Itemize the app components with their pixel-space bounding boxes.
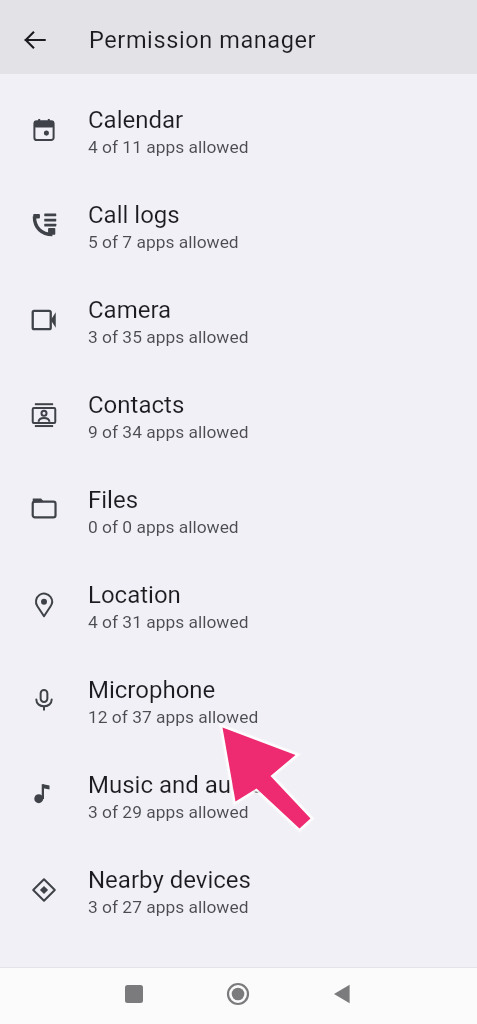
button[interactable]: Contacts [0,369,477,464]
button[interactable]: Navigate up [8,13,62,67]
staticText: 3 of 35 apps allowed [88,327,249,347]
button[interactable]: Music and audio [0,749,477,844]
button[interactable]: Recent apps [114,974,154,1014]
staticText: 4 of 31 apps allowed [88,612,249,632]
button[interactable]: Camera [0,274,477,369]
staticText: Nearby devices [88,866,251,894]
staticText: Microphone [88,676,216,704]
staticText: Camera [88,296,172,324]
staticText: 0 of 0 apps allowed [88,517,239,537]
staticText: 5 of 7 apps allowed [88,232,239,252]
button[interactable]: Back [322,974,362,1014]
staticText: 4 of 11 apps allowed [88,137,249,157]
staticText: 3 of 29 apps allowed [88,802,249,822]
staticText: Permission manager [89,26,317,54]
staticText: 3 of 27 apps allowed [88,897,249,917]
staticText: Files [88,486,139,514]
staticText: Call logs [88,201,180,229]
button[interactable]: Home [218,974,258,1014]
staticText: Contacts [88,391,185,419]
staticText: 9 of 34 apps allowed [88,422,249,442]
button[interactable]: Microphone [0,654,477,749]
button[interactable]: Location [0,559,477,654]
button[interactable]: Call logs [0,179,477,274]
button[interactable]: Calendar [0,84,477,179]
button[interactable]: Nearby devices [0,844,477,939]
staticText: 12 of 37 apps allowed [88,707,259,727]
staticText: Music and audio [88,771,265,799]
staticText: Location [88,581,181,609]
staticText: Calendar [88,106,184,134]
button[interactable]: Files [0,464,477,559]
